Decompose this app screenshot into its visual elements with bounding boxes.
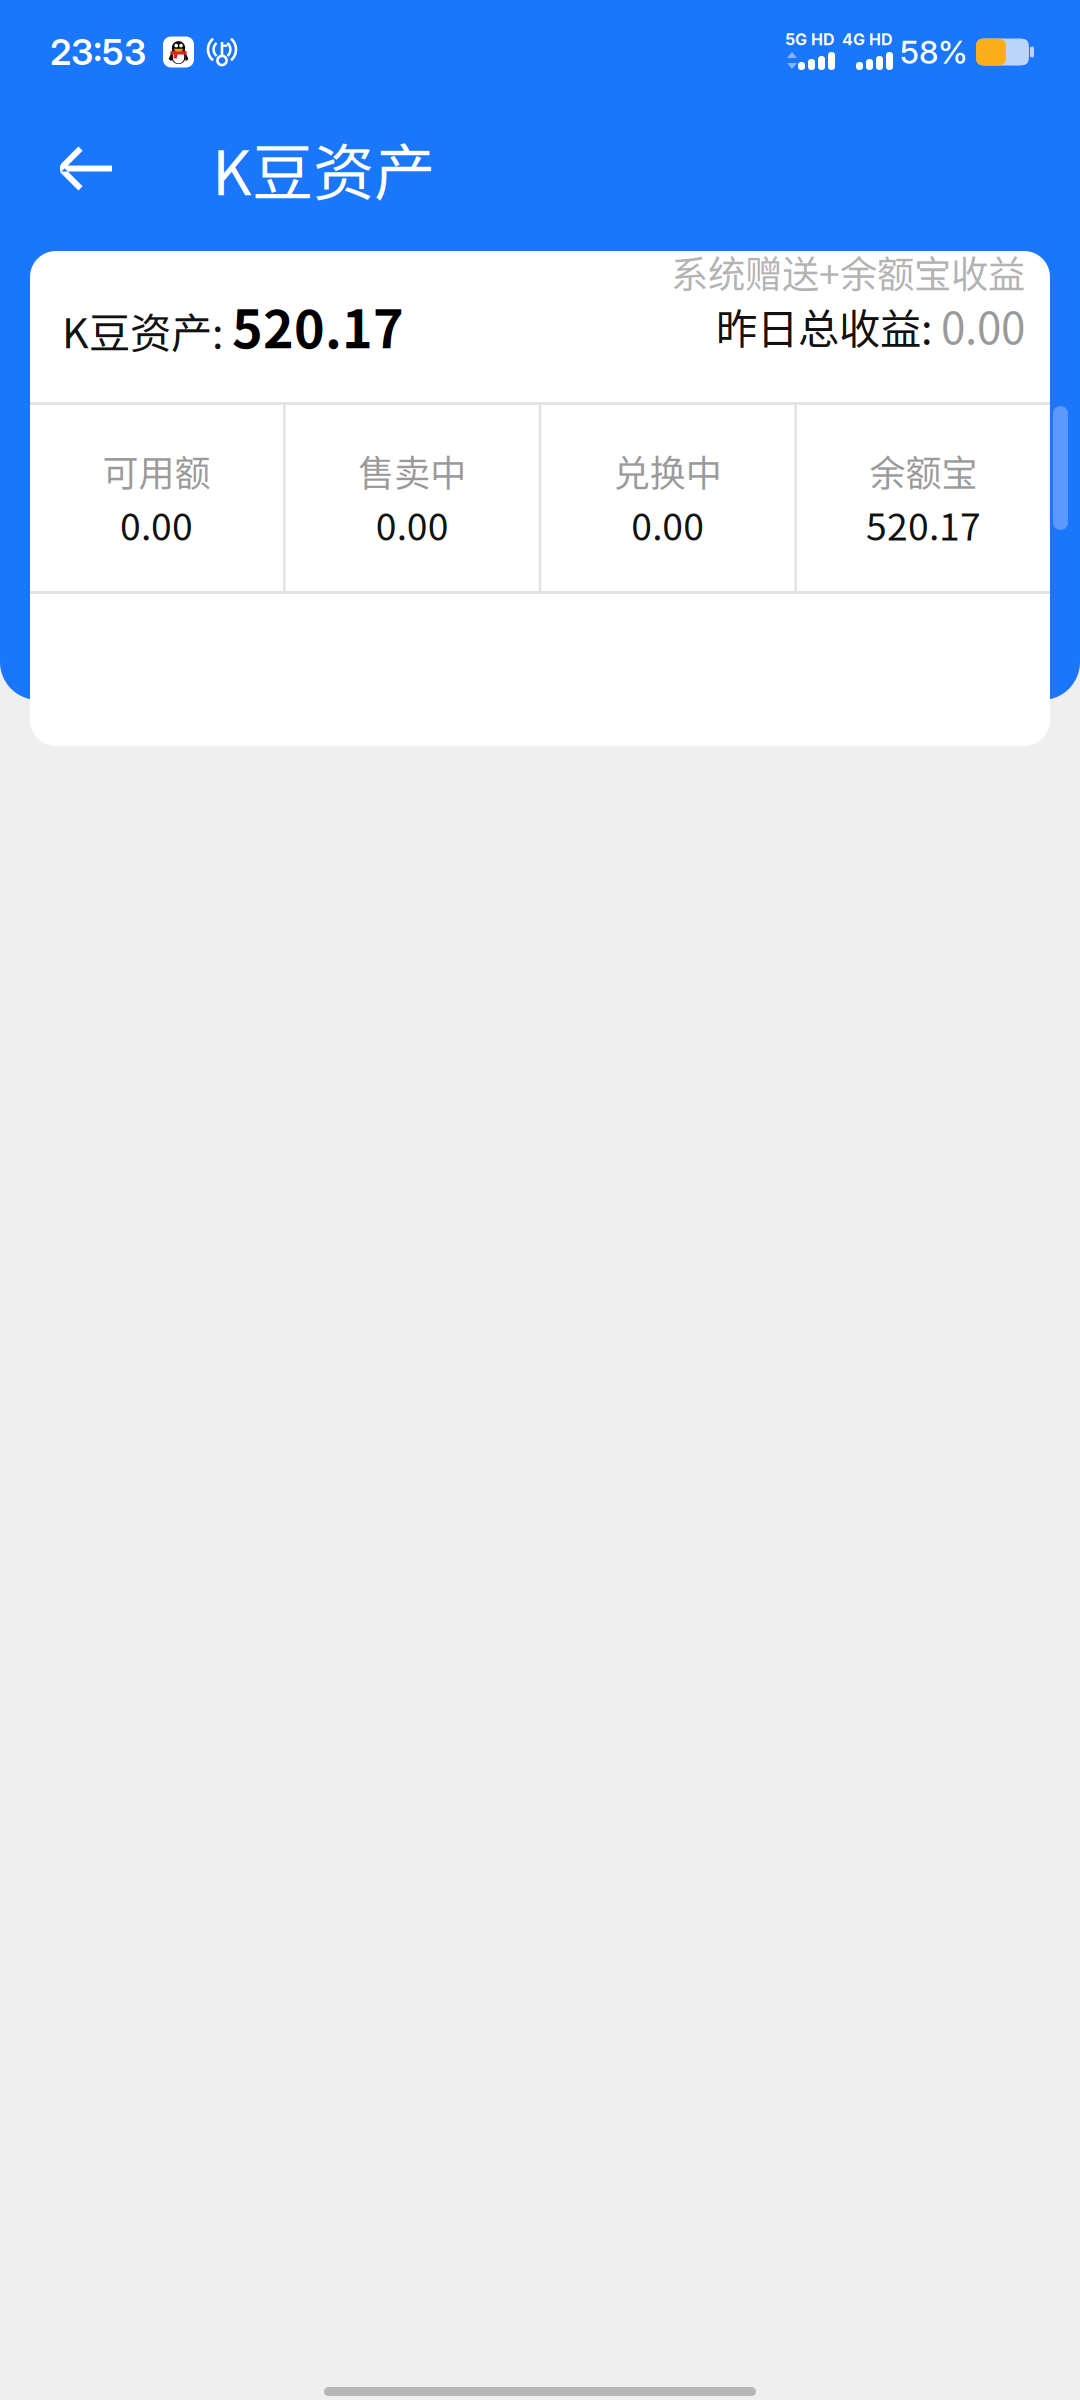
staticText: 可用额 — [103, 445, 211, 497]
staticText: 520.17 — [866, 497, 981, 551]
staticText: 5G HD — [785, 30, 835, 49]
staticText: K豆资产: — [62, 300, 223, 360]
staticText: 兑换中 — [614, 445, 722, 497]
staticText: 4G HD — [842, 30, 893, 49]
staticText: 0.00 — [120, 497, 193, 551]
staticText: 23:53 — [50, 30, 146, 74]
staticText: 余额宝 — [869, 445, 977, 497]
staticText: K豆资产 — [212, 124, 435, 213]
button[interactable]: Back — [59, 98, 212, 238]
staticText: 系统赠送+余额宝收益 — [671, 245, 1025, 299]
staticText: 0.00 — [376, 497, 449, 551]
staticText: 售卖中 — [358, 445, 466, 497]
staticText: 0.00 — [631, 497, 704, 551]
staticText: 58% — [900, 33, 968, 71]
staticText: 0.00 — [941, 293, 1025, 357]
staticText: 520.17 — [232, 288, 404, 363]
staticText: 昨日总收益: — [716, 296, 941, 356]
